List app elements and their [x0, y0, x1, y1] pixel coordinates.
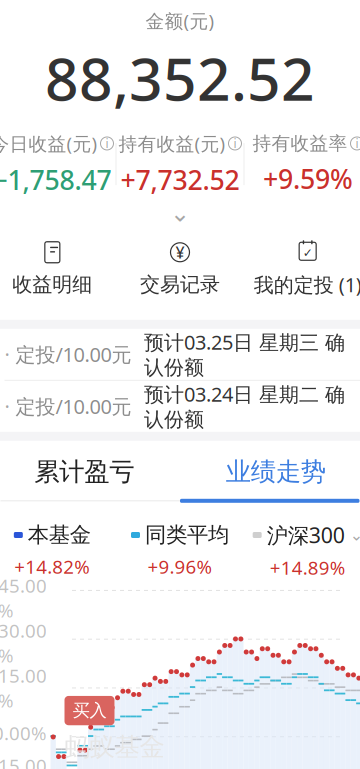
staticText: 定投/10.00元	[15, 341, 131, 368]
staticText: 定投/10.00元	[15, 393, 131, 420]
staticText: 持有收益率	[252, 132, 347, 155]
staticText: ¥	[175, 242, 184, 263]
staticText: 蚂蚁基金	[64, 731, 164, 762]
staticText: 45.00%	[0, 573, 47, 623]
staticText: ⌄	[350, 526, 360, 544]
staticText: -15.00%	[0, 753, 47, 769]
button[interactable]: 沪深300	[244, 521, 360, 580]
staticText: 买入	[72, 700, 106, 721]
staticText: ·	[4, 393, 9, 420]
staticText: 业绩走势	[226, 456, 326, 487]
staticText: 88,352.52	[45, 39, 315, 117]
button[interactable]: ✓	[244, 235, 360, 302]
staticText: 今日收益(元)	[0, 131, 97, 156]
staticText: 收益明细	[12, 272, 92, 297]
staticText: 金额(元)	[145, 8, 214, 33]
staticText: i	[233, 135, 236, 151]
staticText: +9.96%	[147, 554, 212, 579]
staticText: +9.59%	[263, 161, 353, 196]
staticText: 本基金	[28, 522, 91, 548]
button[interactable]: 收益明细	[0, 236, 116, 301]
staticText: i	[355, 135, 358, 151]
staticText: 同类平均	[145, 522, 229, 548]
staticText: 15.00%	[0, 663, 47, 713]
staticText: +14.89%	[270, 555, 346, 580]
staticText: 我的定投 (1)	[254, 271, 360, 298]
staticText: 0.00%	[0, 721, 47, 745]
staticText: +14.82%	[14, 554, 90, 579]
staticText: ✓	[303, 246, 313, 260]
button[interactable]: ·	[0, 329, 360, 380]
button[interactable]: ¥	[116, 236, 244, 301]
button[interactable]: 业绩走势	[180, 445, 360, 499]
button[interactable]: ·	[0, 381, 360, 432]
staticText: −1,758.47	[0, 162, 111, 197]
button[interactable]: 同类平均	[116, 522, 244, 579]
staticText: ⌄	[170, 200, 190, 227]
staticText: +7,732.52	[120, 162, 239, 197]
staticText: i	[105, 135, 108, 151]
staticText: 预计03.25日 星期三 确认份额	[144, 329, 345, 380]
button[interactable]: 展开更多	[158, 201, 202, 225]
staticText: 预计03.24日 星期二 确认份额	[144, 381, 345, 432]
staticText: 累计盈亏	[34, 456, 134, 487]
staticText: 交易记录	[140, 272, 220, 297]
button[interactable]: 累计盈亏	[0, 445, 180, 499]
button[interactable]: 本基金	[0, 522, 116, 579]
staticText: 持有收益(元)	[118, 131, 225, 156]
staticText: 30.00%	[0, 618, 47, 668]
staticText: ·	[4, 341, 9, 368]
staticText: 沪深300	[267, 521, 345, 549]
